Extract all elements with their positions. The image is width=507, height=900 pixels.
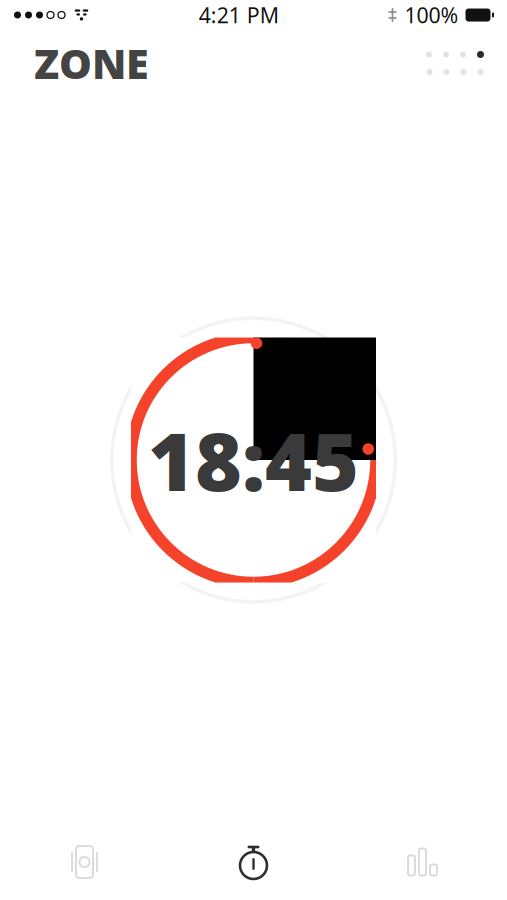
staticText: 4:21 PM bbox=[199, 1, 279, 29]
staticText: ZONE bbox=[34, 36, 149, 90]
button[interactable]: Presets bbox=[426, 39, 507, 87]
button[interactable]: Statistics bbox=[338, 837, 507, 887]
button[interactable]: ZONE bbox=[0, 28, 149, 98]
button[interactable]: Timer bbox=[169, 833, 338, 891]
button[interactable]: Settings bbox=[0, 835, 169, 889]
staticText: 100% bbox=[404, 1, 458, 29]
staticText: 18:45 bbox=[148, 407, 359, 513]
